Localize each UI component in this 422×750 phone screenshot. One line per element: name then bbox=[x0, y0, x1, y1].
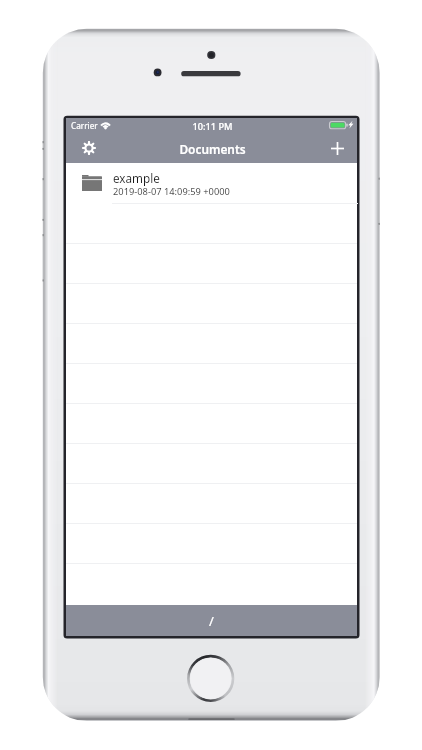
staticText: Carrier bbox=[71, 120, 98, 131]
staticText: example bbox=[113, 170, 160, 186]
button[interactable]: Add bbox=[324, 135, 351, 161]
button[interactable]: / bbox=[66, 605, 357, 636]
button[interactable]: example bbox=[66, 163, 357, 204]
staticText: 2019-08-07 14:09:59 +0000 bbox=[113, 185, 230, 198]
staticText: Documents bbox=[67, 141, 358, 157]
button[interactable]: Settings bbox=[75, 135, 102, 161]
staticText: 10:11 PM bbox=[67, 120, 358, 133]
staticText: / bbox=[209, 612, 214, 630]
